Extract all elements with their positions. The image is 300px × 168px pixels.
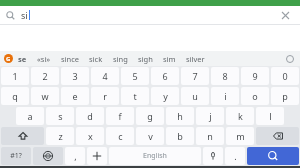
button[interactable]: l (256, 107, 284, 125)
staticText: sing (113, 54, 128, 64)
staticText: g (147, 110, 153, 122)
button[interactable]: r (91, 87, 119, 105)
button[interactable]: j (196, 107, 224, 125)
staticText: s (58, 110, 63, 122)
staticText: sick (89, 54, 103, 64)
button[interactable]: 3 (61, 67, 89, 85)
button[interactable]: z (46, 127, 74, 145)
button[interactable]: Emoji (87, 147, 107, 165)
button[interactable]: k (226, 107, 254, 125)
button[interactable]: 6 (151, 67, 179, 85)
button[interactable]: b (166, 127, 194, 145)
staticText: 1 (12, 70, 18, 82)
button[interactable]: se (18, 54, 27, 64)
staticText: English (143, 151, 167, 161)
staticText: f (118, 110, 122, 122)
button[interactable]: Language (33, 147, 63, 165)
button[interactable]: 5 (121, 67, 149, 85)
staticText: since (61, 54, 79, 64)
button[interactable]: 8 (211, 67, 239, 85)
staticText: sim (163, 54, 176, 64)
button[interactable]: u (181, 87, 209, 105)
staticText: l (269, 110, 272, 122)
button[interactable]: p (271, 87, 299, 105)
button[interactable]: g (136, 107, 164, 125)
button[interactable]: Google (4, 54, 13, 63)
button[interactable]: 9 (241, 67, 269, 85)
button[interactable]: #1? (1, 147, 31, 165)
button[interactable]: since (61, 54, 79, 64)
button[interactable]: . (225, 147, 245, 165)
button[interactable]: q (1, 87, 29, 105)
button[interactable]: s (46, 107, 74, 125)
staticText: . (234, 150, 237, 162)
button[interactable]: t (121, 87, 149, 105)
button[interactable]: Search (0, 6, 300, 24)
staticText: c (118, 130, 123, 142)
button[interactable]: x (76, 127, 104, 145)
button[interactable]: , (65, 147, 85, 165)
staticText: i (224, 90, 227, 102)
staticText: , (74, 150, 77, 162)
staticText: v (148, 130, 153, 142)
staticText: h (177, 110, 183, 122)
button[interactable]: sigh (138, 54, 153, 64)
staticText: 7 (192, 70, 198, 82)
other: Search (6, 11, 15, 20)
staticText: n (207, 130, 213, 142)
button[interactable]: v (136, 127, 164, 145)
staticText: x (88, 130, 93, 142)
staticText: z (58, 130, 63, 142)
button[interactable]: More suggestions (282, 51, 297, 66)
button[interactable]: a (16, 107, 44, 125)
button[interactable]: 0 (271, 67, 299, 85)
button[interactable]: n (196, 127, 224, 145)
button[interactable]: Backspace (256, 127, 299, 145)
staticText: si (21, 9, 28, 21)
staticText: sigh (138, 54, 153, 64)
staticText: 4 (102, 70, 108, 82)
staticText: u (192, 90, 198, 102)
staticText: d (87, 110, 93, 122)
button[interactable]: m (226, 127, 254, 145)
button[interactable]: w (31, 87, 59, 105)
staticText: a (27, 110, 33, 122)
button[interactable]: f (106, 107, 134, 125)
staticText: #1? (10, 151, 22, 161)
staticText: 6 (162, 70, 168, 82)
button[interactable]: h (166, 107, 194, 125)
staticText: o (252, 90, 258, 102)
button[interactable]: d (76, 107, 104, 125)
staticText: y (163, 90, 168, 102)
button[interactable]: 1 (1, 67, 29, 85)
staticText: p (282, 90, 288, 102)
button[interactable]: e (61, 87, 89, 105)
staticText: k (238, 110, 243, 122)
staticText: j (209, 110, 212, 122)
button[interactable]: sick (89, 54, 103, 64)
staticText: 0 (282, 70, 288, 82)
button[interactable]: silver (186, 54, 205, 64)
button[interactable]: sim (163, 54, 176, 64)
button[interactable]: sing (113, 54, 128, 64)
button[interactable]: Voice input (203, 147, 223, 165)
staticText: se (18, 54, 27, 64)
button[interactable]: c (106, 127, 134, 145)
staticText: silver (186, 54, 205, 64)
button[interactable]: English (109, 147, 201, 165)
staticText: 8 (222, 70, 228, 82)
button[interactable]: Shift (1, 127, 44, 145)
button[interactable]: i (211, 87, 239, 105)
button[interactable]: y (151, 87, 179, 105)
staticText: 3 (72, 70, 78, 82)
button[interactable]: 4 (91, 67, 119, 85)
button[interactable]: Clear (276, 6, 294, 24)
button[interactable]: o (241, 87, 269, 105)
button[interactable]: 2 (31, 67, 59, 85)
staticText: q (12, 90, 18, 102)
staticText: w (41, 90, 49, 102)
button[interactable]: 7 (181, 67, 209, 85)
button[interactable]: «si» (37, 54, 51, 64)
staticText: r (103, 90, 107, 102)
button[interactable]: Search (247, 147, 299, 165)
